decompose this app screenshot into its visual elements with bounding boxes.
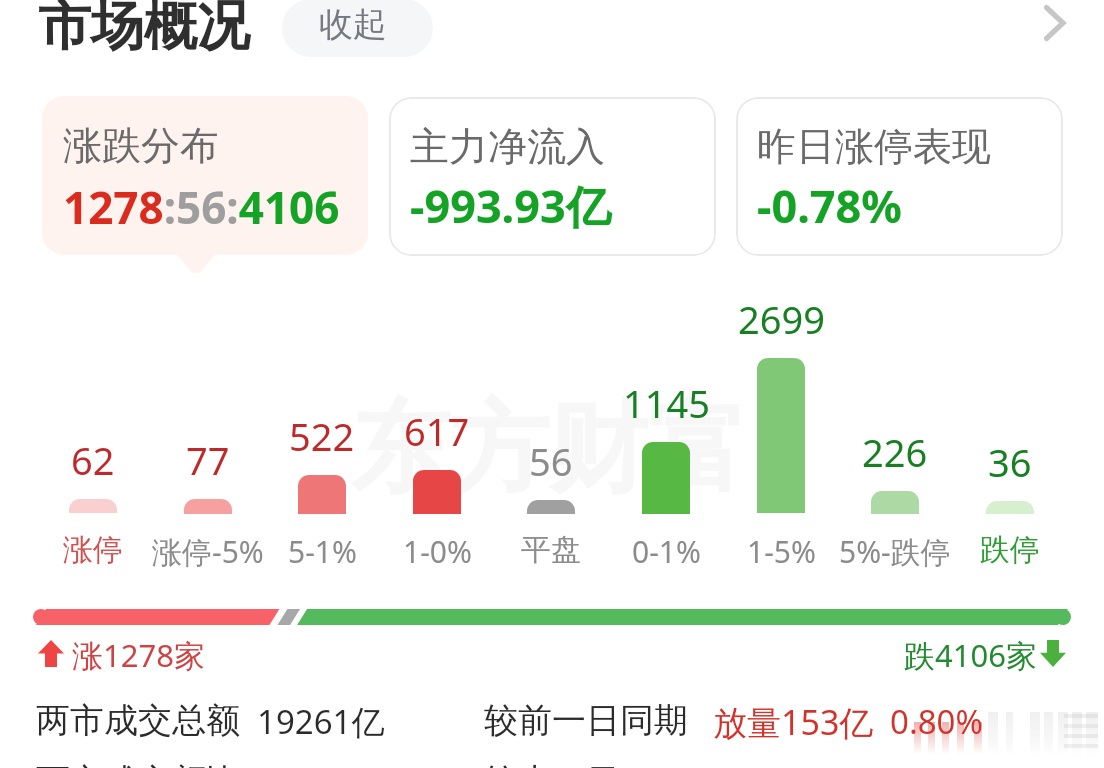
staticText: 1278:56:4106: [63, 177, 340, 237]
staticText: 62: [71, 434, 115, 486]
staticText: 2699: [738, 293, 825, 345]
staticText: 涨1278家: [72, 634, 205, 676]
staticText: 放量153亿: [713, 699, 874, 745]
staticText: 5-1%: [288, 531, 357, 572]
staticText: 跌停: [980, 531, 1040, 569]
staticText: 617: [404, 405, 470, 457]
button[interactable]: 主力净流入: [389, 97, 716, 256]
staticText: 收起: [319, 3, 387, 46]
button[interactable]: 收起: [282, 0, 433, 57]
button[interactable]: 昨日涨停表现: [736, 97, 1063, 256]
staticText: 522: [289, 410, 355, 462]
staticText: 较上一日: [484, 760, 620, 768]
staticText: 平盘: [521, 531, 581, 569]
staticText: 涨跌分布: [63, 121, 219, 170]
staticText: 36: [988, 436, 1032, 488]
staticText: 0-1%: [632, 531, 701, 572]
staticText: 涨停: [63, 531, 123, 569]
staticText: 昨日涨停表现: [757, 122, 991, 171]
staticText: 77: [186, 434, 230, 486]
staticText: 市场概况: [38, 0, 250, 60]
staticText: -0.78%: [757, 175, 902, 236]
staticText: 两市成交总额: [36, 699, 240, 742]
staticText: 东方财富: [351, 387, 747, 512]
staticText: 主力净流入: [410, 122, 605, 171]
staticText: 0.80%: [890, 699, 983, 744]
staticText: 56: [529, 435, 573, 487]
staticText: 1-0%: [403, 531, 472, 572]
staticText: 涨停-5%: [152, 531, 264, 572]
staticText: 226: [862, 426, 928, 478]
button[interactable]: 涨跌分布: [42, 96, 368, 255]
staticText: -993.93亿: [410, 175, 611, 236]
staticText: 1-5%: [747, 531, 816, 572]
staticText: 19261亿: [257, 699, 385, 744]
staticText: 两市成交额比: [36, 760, 240, 768]
button[interactable]: More: [1022, 0, 1082, 53]
staticText: 较前一日同期: [484, 699, 688, 742]
staticText: 跌4106家: [904, 634, 1037, 676]
staticText: 1145: [623, 377, 710, 429]
staticText: 5%-跌停: [839, 531, 951, 572]
